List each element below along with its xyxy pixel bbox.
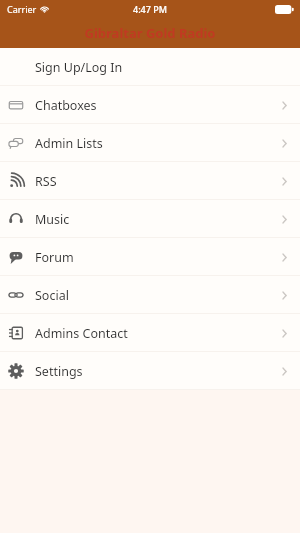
other: Open RSS xyxy=(281,175,288,188)
staticText: Gibraltar Gold Radio xyxy=(0,24,300,42)
staticText: Chatboxes xyxy=(35,97,97,114)
staticText: Admin Lists xyxy=(35,135,103,152)
button[interactable]: Social xyxy=(0,276,300,314)
button[interactable]: Chatboxes xyxy=(0,86,300,124)
other: Open Settings xyxy=(281,365,288,378)
staticText: Carrier xyxy=(7,3,37,15)
button[interactable]: Admin Lists xyxy=(0,124,300,162)
button[interactable]: Settings xyxy=(0,352,300,390)
other: Open Admins Contact xyxy=(281,327,288,340)
staticText: Settings xyxy=(35,363,83,380)
other: Open Music xyxy=(281,213,288,226)
staticText: Admins Contact xyxy=(35,325,128,342)
staticText: RSS xyxy=(35,173,57,190)
button[interactable]: RSS xyxy=(0,162,300,200)
button[interactable]: Admins Contact xyxy=(0,314,300,352)
other: Open Social xyxy=(281,289,288,302)
other: Open Admin Lists xyxy=(281,137,288,150)
button[interactable]: Music xyxy=(0,200,300,238)
staticText: Forum xyxy=(35,249,74,266)
staticText: Music xyxy=(35,211,70,228)
button[interactable]: Sign Up/Log In xyxy=(0,48,300,86)
staticText: 4:47 PM xyxy=(133,3,167,15)
staticText: Social xyxy=(35,287,69,304)
staticText: Sign Up/Log In xyxy=(35,59,123,76)
other: Open Forum xyxy=(281,251,288,264)
other: Open Chatboxes xyxy=(281,99,288,112)
button[interactable]: Forum xyxy=(0,238,300,276)
